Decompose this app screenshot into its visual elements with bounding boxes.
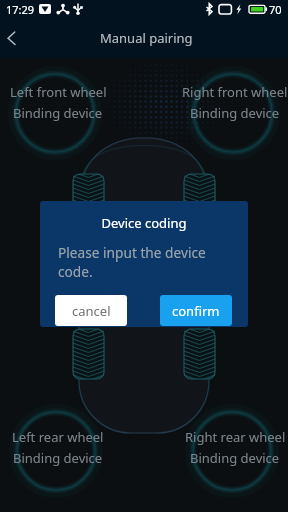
button[interactable]: Right rear wheel xyxy=(165,428,288,467)
staticText: 17:29 xyxy=(6,2,35,17)
button[interactable]: confirm xyxy=(160,295,232,326)
button[interactable]: Left rear wheel xyxy=(0,428,128,467)
button[interactable]: cancel xyxy=(55,295,127,326)
staticText: Binding device xyxy=(13,449,103,467)
staticText: Right rear wheel xyxy=(185,428,286,446)
staticText: cancel xyxy=(72,302,111,320)
staticText: 70 xyxy=(269,2,282,17)
staticText: Please input the device code. xyxy=(58,243,216,281)
button[interactable]: Back xyxy=(0,21,34,55)
staticText: Left front wheel xyxy=(10,83,107,101)
button[interactable]: Right front wheel xyxy=(165,83,288,122)
staticText: confirm xyxy=(172,302,220,320)
staticText: Binding device xyxy=(190,449,280,467)
staticText: Left rear wheel xyxy=(12,428,104,446)
staticText: Manual pairing xyxy=(100,29,193,47)
staticText: Binding device xyxy=(190,104,280,122)
button[interactable]: Left front wheel xyxy=(0,83,128,122)
staticText: Binding device xyxy=(13,104,103,122)
staticText: Device coding xyxy=(40,214,248,232)
staticText: Right front wheel xyxy=(182,83,288,101)
